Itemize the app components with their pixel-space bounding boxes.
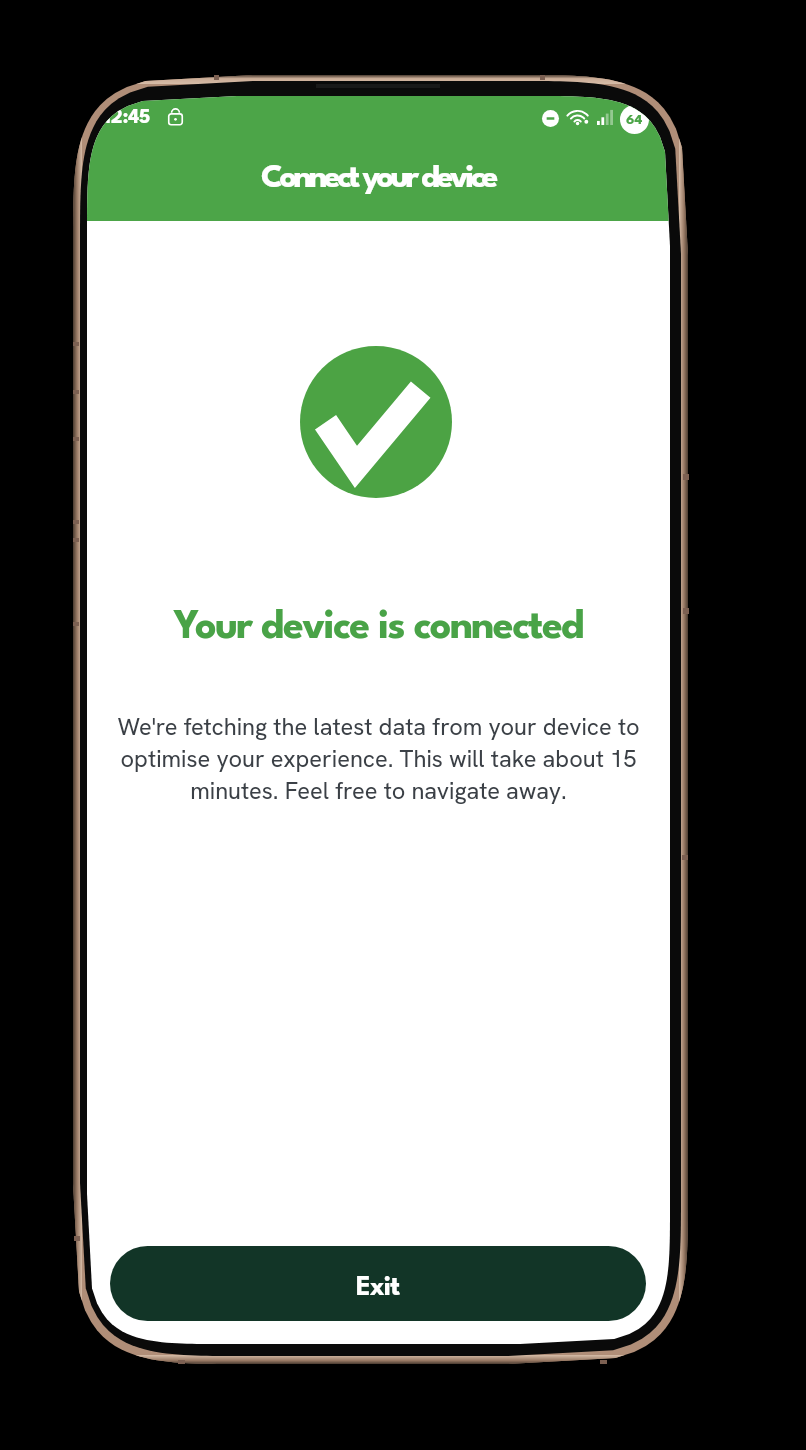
staticText: We're fetching the latest data from your… xyxy=(115,711,642,806)
staticText: 64 xyxy=(626,113,643,127)
staticText: Exit xyxy=(356,1276,400,1301)
button[interactable]: Exit xyxy=(110,1246,646,1321)
staticText: Your device is connected xyxy=(87,609,670,648)
staticText: Connect your device xyxy=(261,163,495,194)
staticText: 12:45 xyxy=(104,108,151,127)
